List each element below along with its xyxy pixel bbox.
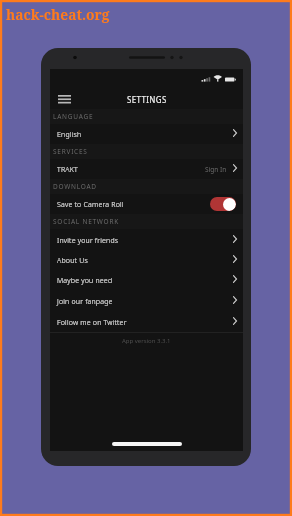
staticText: SERVICES bbox=[53, 147, 88, 156]
staticText: Save to Camera Roll bbox=[57, 200, 124, 210]
button[interactable]: Follow me on Twitter bbox=[50, 311, 243, 332]
button[interactable]: Menu bbox=[54, 89, 74, 110]
button[interactable]: Invite your friends bbox=[50, 229, 243, 250]
staticText: Maybe you need bbox=[57, 276, 113, 286]
staticText: SETTINGS bbox=[127, 94, 167, 105]
button[interactable]: TRAKT bbox=[50, 159, 243, 179]
staticText: App version 3.3.1 bbox=[122, 337, 171, 345]
staticText: DOWNLOAD bbox=[53, 182, 97, 191]
staticText: Sign In bbox=[205, 165, 227, 174]
staticText: LANGUAGE bbox=[53, 112, 94, 121]
staticText: hack-cheat.org bbox=[6, 5, 110, 24]
staticText: SOCIAL NETWORK bbox=[53, 217, 119, 226]
button[interactable]: About Us bbox=[50, 250, 243, 270]
staticText: Join our fanpage bbox=[57, 297, 113, 307]
button[interactable]: Maybe you need bbox=[50, 270, 243, 290]
button[interactable]: Save to Camera Roll bbox=[50, 194, 243, 214]
staticText: Invite your friends bbox=[57, 236, 119, 246]
staticText: About Us bbox=[57, 256, 88, 266]
button[interactable]: Join our fanpage bbox=[50, 290, 243, 311]
staticText: English bbox=[57, 130, 82, 140]
staticText: Follow me on Twitter bbox=[57, 318, 127, 328]
button[interactable]: English bbox=[50, 124, 243, 144]
staticText: TRAKT bbox=[57, 165, 78, 175]
